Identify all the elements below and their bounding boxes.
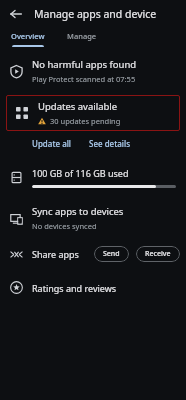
button[interactable]: Back — [6, 4, 26, 24]
button[interactable]: See details — [87, 135, 133, 152]
staticText: Ratings and reviews — [32, 282, 117, 294]
staticText: Share apps — [32, 248, 79, 260]
button[interactable]: Send — [94, 246, 129, 262]
staticText: See details — [89, 138, 131, 149]
button[interactable]: Play Protect — [0, 58, 186, 86]
staticText: Play Protect scanned at 07:55 — [32, 74, 136, 84]
button[interactable]: 100 GB of 116 GB used — [0, 165, 186, 190]
button[interactable]: Update all — [30, 135, 74, 152]
staticText: 30 updates pending — [50, 116, 121, 126]
button[interactable]: Ratings and reviews — [0, 278, 186, 297]
staticText: Send — [103, 249, 120, 259]
staticText: Manage — [67, 31, 97, 41]
staticText: Sync apps to devices — [32, 205, 124, 218]
other: Sync apps — [0, 212, 32, 225]
button[interactable]: Manage — [56, 28, 108, 45]
staticText: Update all — [32, 138, 72, 149]
other: Play Protect — [0, 65, 32, 78]
staticText: No devices synced — [32, 221, 97, 231]
button[interactable]: Overview — [0, 28, 56, 47]
staticText: Updates available — [38, 100, 118, 113]
staticText: 100 GB of 116 GB used — [32, 167, 129, 179]
button[interactable]: Sync apps — [0, 205, 186, 233]
staticText: Receive — [145, 249, 171, 259]
button[interactable]: Updates available — [6, 95, 180, 131]
staticText: No harmful apps found — [32, 58, 137, 71]
staticText: Manage apps and device — [34, 7, 157, 21]
staticText: Overview — [11, 31, 45, 41]
button[interactable]: Receive — [136, 246, 180, 262]
